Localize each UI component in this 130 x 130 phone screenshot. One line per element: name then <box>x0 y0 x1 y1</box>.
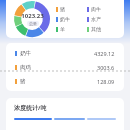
button[interactable]: 猪 <box>56 6 87 12</box>
button[interactable]: 肉牛 <box>87 6 119 12</box>
staticText: 奶牛 <box>60 16 70 22</box>
button[interactable]: 奶牛 <box>56 16 87 22</box>
staticText: 猪 <box>60 6 65 12</box>
button[interactable]: 肉鸡 <box>6 60 124 74</box>
button[interactable]: 猪 <box>6 74 124 88</box>
staticText: 4329.12 <box>94 50 115 57</box>
button[interactable]: 奶牛 <box>6 46 124 60</box>
staticText: 羊 <box>60 26 65 32</box>
staticText: 总量 <box>29 21 37 26</box>
button[interactable]: 羊 <box>56 26 87 32</box>
staticText: 128.09 <box>97 78 115 85</box>
staticText: 其他 <box>91 26 101 32</box>
button[interactable]: 水产 <box>87 16 119 22</box>
staticText: 水产 <box>91 16 101 22</box>
staticText: 奶牛 <box>20 50 31 57</box>
staticText: 肉鸡 <box>20 64 31 71</box>
button[interactable]: 其他 <box>87 26 119 32</box>
button[interactable]: 1023.23 <box>14 1 50 37</box>
staticText: 1023.23 <box>21 12 44 20</box>
staticText: 3003.6 <box>97 64 115 71</box>
staticText: 浓度统计/吨 <box>14 104 47 112</box>
staticText: 肉牛 <box>91 6 101 12</box>
staticText: 猪 <box>20 78 26 85</box>
